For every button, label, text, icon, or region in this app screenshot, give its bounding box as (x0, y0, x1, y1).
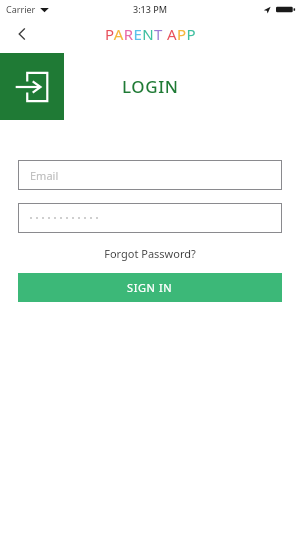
staticText: LOGIN (122, 75, 179, 98)
staticText: SIGN IN (127, 280, 173, 295)
button[interactable] (18, 203, 282, 233)
button[interactable]: Email (18, 160, 282, 190)
button[interactable]: Back (0, 18, 44, 50)
staticText: 3:13 PM (133, 3, 167, 15)
button[interactable]: Forgot Password? (98, 244, 202, 263)
staticText: Carrier (6, 3, 36, 15)
staticText: PARENT APP (105, 24, 196, 44)
staticText: Email (30, 168, 59, 183)
button[interactable]: SIGN IN (18, 273, 282, 302)
